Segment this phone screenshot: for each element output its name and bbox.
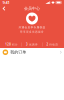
button[interactable]: 3 [22,42,42,47]
staticText: 2 [46,43,48,46]
button[interactable]: Back [0,5,8,12]
staticText: 我的订单 [10,50,26,55]
staticText: 9:41 [2,0,9,5]
button[interactable]: 2 [42,42,62,47]
button[interactable]: 我的订单 [0,48,64,56]
staticText: 128 [5,43,11,46]
staticText: 优惠券 [29,43,38,46]
button[interactable]: 128 [1,42,22,47]
staticText: 尊享更多优惠服务 [20,30,44,33]
staticText: 会员中心 [24,6,40,11]
staticText: 3 [26,43,28,46]
staticText: 待收货 [49,43,58,46]
staticText: 积分 [12,43,18,46]
staticText: 开通会员享专属权益 [18,26,45,29]
